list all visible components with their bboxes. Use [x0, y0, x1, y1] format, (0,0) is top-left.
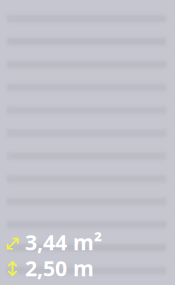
staticText: 2,50 m — [25, 254, 94, 282]
button[interactable]: 3,44 m² — [6, 237, 107, 258]
staticText: 3,44 m² — [25, 228, 102, 256]
button[interactable]: 2,50 m — [6, 263, 107, 284]
